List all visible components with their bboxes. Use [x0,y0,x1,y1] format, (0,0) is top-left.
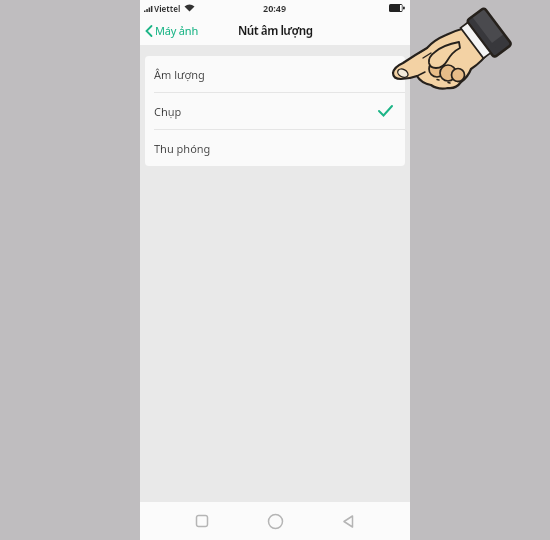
staticText: Thu phóng [154,141,211,156]
button[interactable]: Chụp [145,93,405,129]
button[interactable] [172,502,232,540]
button[interactable]: Thu phóng [145,130,405,166]
button[interactable]: Máy ảnh [143,21,200,40]
staticText: Máy ảnh [155,23,198,38]
staticText: 20:49 [263,2,287,14]
button[interactable]: Âm lượng [145,56,405,92]
staticText: Âm lượng [154,67,205,82]
staticText: Nút âm lượng [238,23,313,39]
staticText: Chụp [154,104,182,119]
button[interactable] [318,502,378,540]
staticText: Viettel [154,3,181,14]
button[interactable] [245,502,305,540]
